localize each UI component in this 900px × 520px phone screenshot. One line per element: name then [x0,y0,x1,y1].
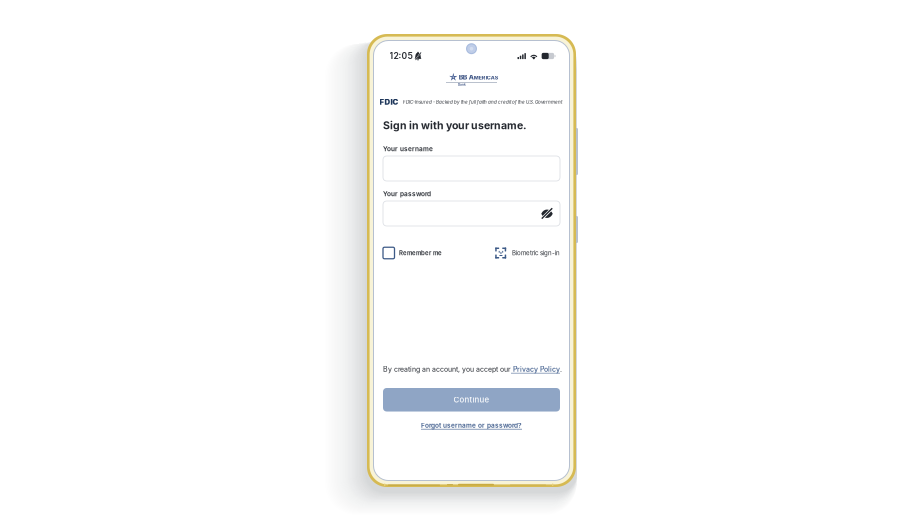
staticText: FDIC [379,97,398,107]
staticText: Sign in with your username. [383,119,527,132]
button[interactable]: Forgot username or password? [383,420,560,431]
button[interactable]: Biometric sign-in [495,246,560,260]
button[interactable]: Privacy Policy [511,365,560,373]
staticText: MERICAS [474,74,498,81]
button[interactable]: Remember me [383,246,442,260]
staticText: . [560,365,562,373]
staticText: Forgot username or password? [421,422,522,429]
staticText: Continue [453,395,489,404]
staticText: Bank [458,83,466,86]
button[interactable]: Continue [383,388,560,411]
button[interactable]: Show password [536,201,558,226]
staticText: By creating an account, you accept our [383,365,511,373]
staticText: Remember me [399,249,442,257]
staticText: Biometric sign-in [512,249,560,257]
staticText: FDIC-Insured - Backed by the full faith … [403,99,562,105]
staticText: 12:05 [389,51,412,61]
staticText: Privacy Policy [511,365,560,373]
staticText: Your password [383,190,431,198]
staticText: Your username [383,145,433,153]
staticText: BB A [459,73,474,81]
